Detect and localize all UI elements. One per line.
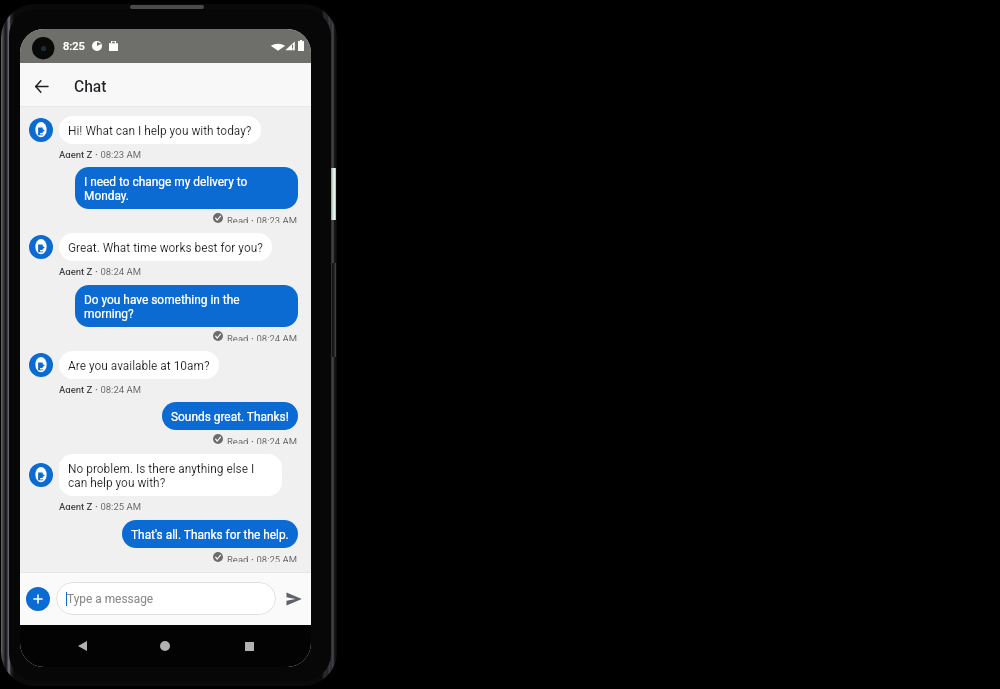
button[interactable]: Type a message bbox=[56, 582, 276, 615]
staticText: Agent Z · 08:24 AM bbox=[59, 382, 141, 393]
button[interactable]: Do you have something in the morning? bbox=[75, 285, 298, 327]
staticText: Read · 08:23 AM bbox=[227, 213, 298, 223]
staticText: That's all. Thanks for the help. bbox=[131, 528, 289, 542]
button[interactable]: Home bbox=[149, 630, 181, 662]
staticText: Are you available at 10am? bbox=[68, 359, 210, 373]
staticText: I need to change my delivery to Monday. bbox=[84, 175, 289, 203]
staticText: Great. What time works best for you? bbox=[68, 241, 263, 255]
staticText: Agent Z · 08:24 AM bbox=[59, 264, 141, 275]
staticText: Agent Z · 08:23 AM bbox=[59, 147, 141, 158]
staticText: Read · 08:25 AM bbox=[227, 552, 298, 562]
staticText: Hi! What can I help you with today? bbox=[68, 124, 252, 138]
button[interactable]: That's all. Thanks for the help. bbox=[122, 520, 298, 548]
staticText: Chat bbox=[74, 78, 107, 96]
button[interactable]: Send bbox=[280, 585, 308, 613]
staticText: Agent Z · 08:25 AM bbox=[59, 499, 141, 510]
staticText: Read · 08:24 AM bbox=[227, 434, 298, 444]
button[interactable]: Are you available at 10am? bbox=[59, 351, 219, 379]
staticText: Sounds great. Thanks! bbox=[171, 410, 289, 424]
button[interactable]: Sounds great. Thanks! bbox=[162, 402, 298, 430]
button[interactable]: No problem. Is there anything else I can… bbox=[59, 454, 282, 496]
staticText: Read · 08:24 AM bbox=[227, 331, 298, 341]
button[interactable]: Add attachment bbox=[26, 587, 50, 611]
staticText: Do you have something in the morning? bbox=[84, 293, 289, 321]
button[interactable]: I need to change my delivery to Monday. bbox=[75, 167, 298, 209]
button[interactable]: Back bbox=[66, 630, 98, 662]
button[interactable]: Great. What time works best for you? bbox=[59, 233, 272, 261]
staticText: No problem. Is there anything else I can… bbox=[68, 462, 273, 490]
button[interactable]: Back bbox=[20, 65, 60, 105]
staticText: Type a message bbox=[67, 592, 154, 606]
staticText: 8:25 bbox=[63, 40, 85, 53]
button[interactable]: Hi! What can I help you with today? bbox=[59, 116, 261, 144]
button[interactable]: Recent apps bbox=[233, 630, 265, 662]
